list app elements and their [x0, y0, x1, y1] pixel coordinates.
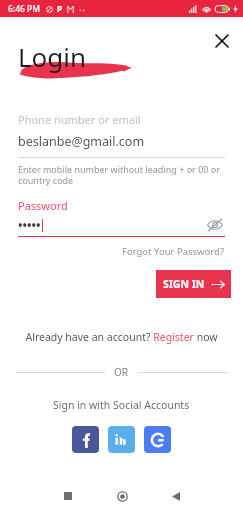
button[interactable]: Sign in with LinkedIn — [108, 426, 135, 453]
button[interactable]: Already have an account? Register now — [21, 328, 222, 346]
button[interactable]: Sign in with Facebook — [72, 426, 99, 453]
button[interactable]: Recents — [53, 481, 83, 511]
staticText: Enter mobile number without leading + or… — [18, 163, 220, 187]
staticText: Phone number or email — [18, 112, 141, 127]
button[interactable]: SIGN IN — [156, 270, 231, 298]
staticText: Forgot Your Password? — [122, 245, 225, 258]
staticText: OR — [114, 365, 129, 379]
staticText: Already have an account? Register now — [25, 330, 218, 344]
button[interactable]: Back — [161, 481, 191, 511]
staticText: Login — [18, 39, 87, 74]
button[interactable]: Close — [209, 28, 235, 54]
staticText: Sign in with Social Accounts — [53, 398, 190, 412]
staticText: SIGN IN — [163, 277, 205, 291]
staticText: 6:46 PM — [8, 3, 41, 15]
staticText: P — [57, 3, 63, 15]
button[interactable]: Show password — [205, 216, 225, 233]
staticText: beslanbe@gmail.com — [18, 133, 145, 150]
button[interactable]: Home — [107, 481, 137, 511]
staticText: Password — [18, 198, 68, 213]
staticText: ••••• — [18, 217, 41, 233]
button[interactable]: Forgot Your Password? — [122, 245, 225, 258]
button[interactable]: Sign in with Google — [144, 426, 171, 453]
